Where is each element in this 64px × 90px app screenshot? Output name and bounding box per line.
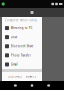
button[interactable]: JUST ONCE bbox=[7, 72, 23, 81]
button[interactable]: Mirroring to PC bbox=[2, 23, 42, 33]
staticText: Mirroring to PC bbox=[11, 26, 33, 30]
button[interactable]: Bluetooth Share bbox=[2, 42, 42, 51]
button[interactable]: Back bbox=[14, 84, 17, 87]
staticText: Gmail bbox=[11, 63, 18, 66]
staticText: Drive bbox=[11, 35, 18, 39]
staticText: JUST ONCE bbox=[8, 75, 21, 78]
button[interactable]: Gmail bbox=[2, 60, 42, 69]
button[interactable]: Photo Transfer bbox=[2, 51, 42, 60]
staticText: Complete action using bbox=[5, 18, 37, 22]
staticText: Photo Transfer bbox=[11, 54, 31, 57]
button[interactable]: Recents bbox=[47, 84, 50, 87]
staticText: Bluetooth Share bbox=[11, 44, 34, 48]
staticText: ALWAYS bbox=[25, 75, 35, 78]
button[interactable]: Drive bbox=[2, 33, 42, 42]
button[interactable]: Home bbox=[31, 84, 33, 87]
button[interactable]: ALWAYS bbox=[24, 72, 37, 81]
